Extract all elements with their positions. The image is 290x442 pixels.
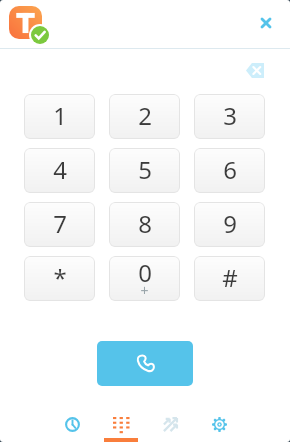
staticText: # [222, 261, 238, 294]
staticText: * [53, 261, 67, 294]
staticText: 0 [138, 256, 152, 289]
staticText: 8 [138, 207, 152, 240]
button[interactable]: 4 [24, 148, 95, 193]
button[interactable]: Dialpad [96, 396, 145, 442]
staticText: 3 [223, 99, 237, 132]
staticText: 9 [223, 207, 237, 240]
button[interactable]: # [194, 256, 265, 301]
staticText: 2 [138, 99, 152, 132]
staticText: 1 [53, 99, 67, 132]
button[interactable]: 9 [194, 202, 265, 247]
button[interactable]: 2 [109, 94, 180, 139]
button[interactable]: 1 [24, 94, 95, 139]
button[interactable]: 6 [194, 148, 265, 193]
button[interactable]: 3 [194, 94, 265, 139]
button[interactable]: Settings [194, 396, 243, 442]
staticText: 4 [53, 153, 67, 186]
button[interactable]: Recents [47, 396, 96, 442]
button[interactable]: * [24, 256, 95, 301]
button[interactable]: Backspace [240, 58, 270, 82]
button[interactable]: Close [254, 11, 278, 35]
button[interactable]: 7 [24, 202, 95, 247]
button[interactable]: Transfer [145, 396, 194, 442]
staticText: + [140, 281, 149, 300]
staticText: 6 [223, 153, 237, 186]
button[interactable]: 0 [109, 256, 180, 301]
staticText: 7 [53, 207, 67, 240]
button[interactable]: 8 [109, 202, 180, 247]
staticText: 5 [138, 153, 152, 186]
button[interactable]: Call [97, 341, 193, 386]
button[interactable]: 5 [109, 148, 180, 193]
